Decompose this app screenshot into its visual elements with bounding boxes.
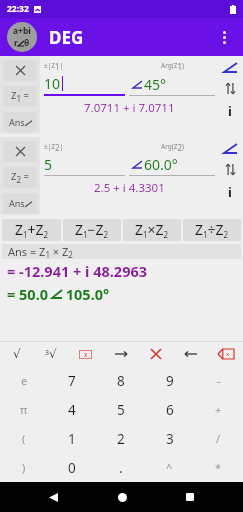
staticText: -	[217, 373, 221, 388]
button[interactable]: *	[194, 453, 243, 482]
button[interactable]: Recall Ans to Z2	[3, 193, 37, 213]
button[interactable]: 7	[48, 366, 96, 395]
staticText: 7	[68, 372, 76, 390]
staticText: Ans	[9, 197, 25, 209]
staticText: Z1−Z2	[75, 220, 109, 240]
staticText: 4	[68, 401, 76, 419]
staticText: 1	[68, 430, 76, 448]
button[interactable]: 6	[145, 395, 194, 424]
staticText: Arg(Z1)	[161, 61, 184, 73]
staticText: 2	[117, 430, 125, 448]
staticText: ^	[166, 460, 173, 475]
button[interactable]: Swap	[220, 162, 240, 176]
button[interactable]: -	[194, 366, 243, 395]
staticText: x	[84, 350, 88, 359]
staticText: ±|Z2|	[44, 142, 64, 154]
button[interactable]: Z1×Z2	[123, 219, 181, 241]
staticText: π	[20, 402, 28, 417]
button[interactable]: Polar form	[220, 60, 240, 74]
staticText: *	[215, 460, 222, 475]
button[interactable]: Set Z1	[3, 86, 37, 107]
staticText: r	[14, 37, 18, 49]
staticText: 3	[166, 430, 174, 448]
button[interactable]: Home	[107, 482, 137, 512]
button[interactable]: Cursor right	[103, 342, 138, 366]
button[interactable]: 3	[145, 424, 194, 453]
button[interactable]: 4	[48, 395, 96, 424]
staticText: 60.0°	[144, 155, 178, 174]
button[interactable]: )	[0, 453, 48, 482]
button[interactable]: Back	[38, 482, 68, 512]
staticText: Arg(Z2)	[161, 142, 184, 154]
staticText: 6	[166, 401, 174, 419]
staticText: i	[228, 183, 232, 197]
button[interactable]: Cube root	[34, 342, 68, 366]
staticText: = -12.941 + i 48.2963	[7, 261, 148, 281]
staticText: √	[13, 347, 21, 361]
button[interactable]: Recall Ans to Z1	[3, 112, 37, 132]
button[interactable]: Z1−Z2	[63, 219, 121, 241]
button[interactable]: Recent apps	[175, 482, 205, 512]
button[interactable]: Swap	[220, 81, 240, 95]
staticText: Ans = Z1 × Z2	[8, 244, 73, 259]
staticText: a+bi	[13, 25, 31, 37]
button[interactable]: 8	[96, 366, 145, 395]
staticText: /	[216, 431, 221, 446]
button[interactable]: App icon	[7, 22, 37, 52]
button[interactable]: Rectangular form	[220, 102, 240, 116]
button[interactable]: Backspace	[208, 342, 243, 366]
staticText: .	[119, 459, 123, 477]
staticText: +	[215, 402, 222, 417]
button[interactable]: 2	[96, 424, 145, 453]
button[interactable]: 9	[145, 366, 194, 395]
button[interactable]: Z1+Z2	[2, 219, 61, 241]
button[interactable]: Clear Z2	[3, 141, 37, 162]
staticText: 22:32	[7, 3, 29, 15]
button[interactable]: Rectangular form	[220, 183, 240, 197]
staticText: 9	[166, 372, 174, 390]
button[interactable]: 1	[48, 424, 96, 453]
staticText: 5	[117, 401, 125, 419]
staticText: (	[22, 431, 26, 446]
staticText: )	[22, 460, 26, 475]
button[interactable]: (	[0, 424, 48, 453]
button[interactable]: Polar form	[220, 141, 240, 155]
button[interactable]: π	[0, 395, 48, 424]
staticText: x	[226, 350, 230, 358]
staticText: ±|Z1|	[44, 61, 64, 73]
staticText: 45°	[144, 75, 167, 94]
button[interactable]: More options	[212, 25, 236, 49]
button[interactable]: 0	[48, 453, 96, 482]
staticText: 105.0°	[62, 284, 110, 304]
staticText: Ans	[9, 116, 25, 128]
staticText: 8	[117, 372, 125, 390]
staticText: Z1×Z2	[135, 220, 169, 240]
staticText: e	[21, 373, 28, 388]
staticText: 10	[44, 74, 61, 93]
button[interactable]: ^	[145, 453, 194, 482]
button[interactable]: Set Z2	[3, 167, 37, 188]
button[interactable]: e	[0, 366, 48, 395]
staticText: Z1 =	[11, 89, 29, 104]
staticText: θ	[24, 37, 30, 49]
button[interactable]: /	[194, 424, 243, 453]
button[interactable]: 5	[96, 395, 145, 424]
staticText: 2.5 + i 4.3301	[94, 180, 165, 196]
button[interactable]: .	[96, 453, 145, 482]
staticText: = 50.0	[7, 284, 52, 304]
button[interactable]: Clear all	[68, 342, 103, 366]
staticText: Z1+Z2	[15, 220, 49, 240]
staticText: DEG	[49, 26, 84, 49]
button[interactable]: Square root	[0, 342, 34, 366]
button[interactable]: Z1÷Z2	[183, 219, 241, 241]
button[interactable]: Clear field	[138, 342, 173, 366]
staticText: 0	[68, 459, 76, 477]
button[interactable]: Clear Z1	[3, 60, 37, 81]
staticText: 7.0711 + i 7.0711	[84, 100, 175, 116]
staticText: i	[228, 102, 232, 116]
staticText: 3√	[45, 347, 57, 361]
button[interactable]: Cursor left	[173, 342, 208, 366]
staticText: Z2 =	[11, 170, 29, 185]
button[interactable]: +	[194, 395, 243, 424]
staticText: 5	[44, 155, 53, 174]
